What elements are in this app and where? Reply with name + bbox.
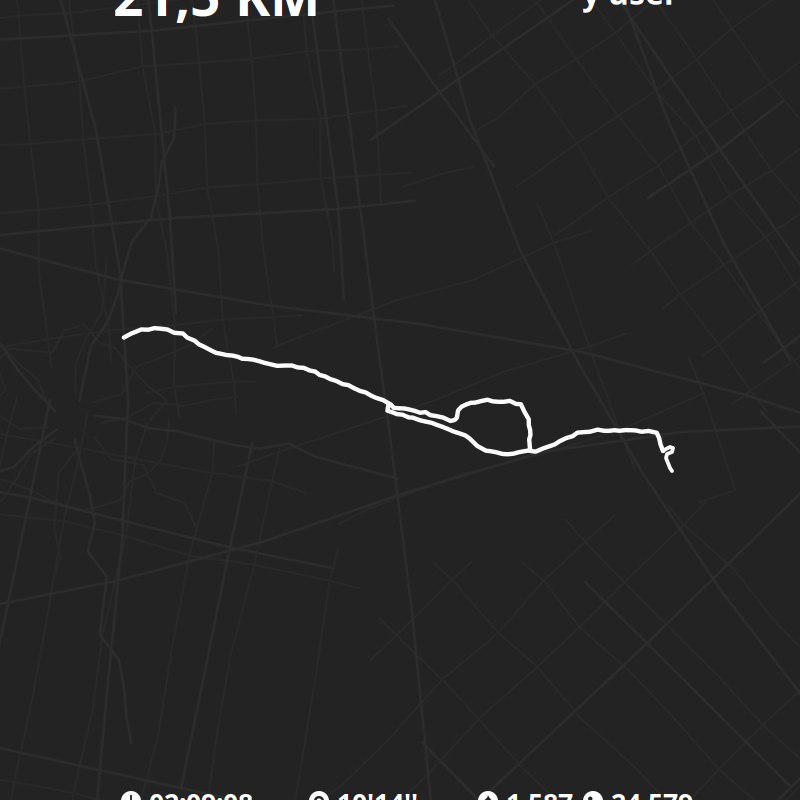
staticText: 02:09:08: [149, 785, 253, 800]
staticText: 21,5 KM: [113, 0, 320, 31]
staticText: y user: [582, 0, 678, 13]
staticText: 1.587: [506, 785, 573, 800]
staticText: 24.579: [611, 785, 693, 800]
staticText: 10'14'': [337, 785, 418, 800]
